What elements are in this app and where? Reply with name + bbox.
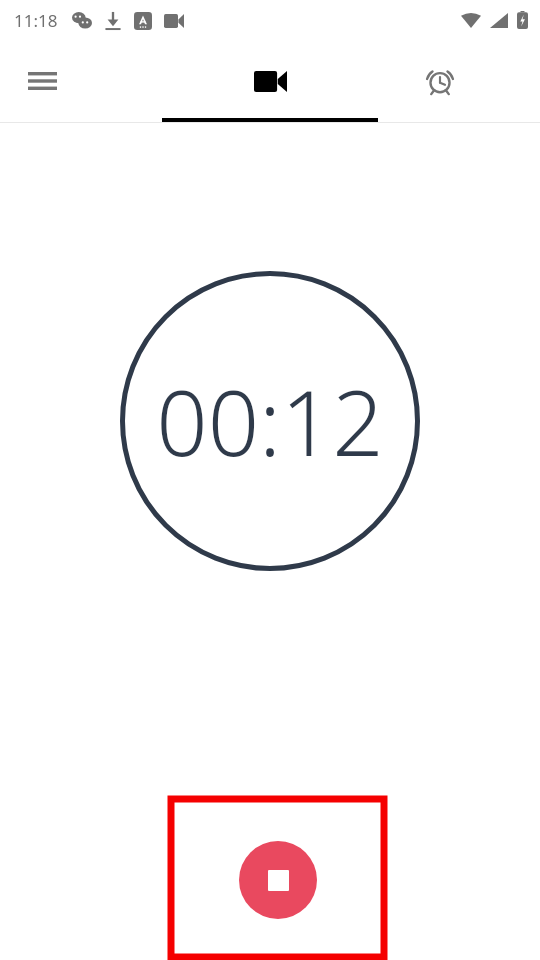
button[interactable]: Alarm [406,47,474,115]
staticText: 11:18 [14,9,58,32]
button[interactable]: Stop recording [239,841,317,919]
button[interactable]: Menu [8,47,76,115]
button[interactable]: Recorder tab [162,40,378,122]
staticText: 00:12 [156,360,384,483]
